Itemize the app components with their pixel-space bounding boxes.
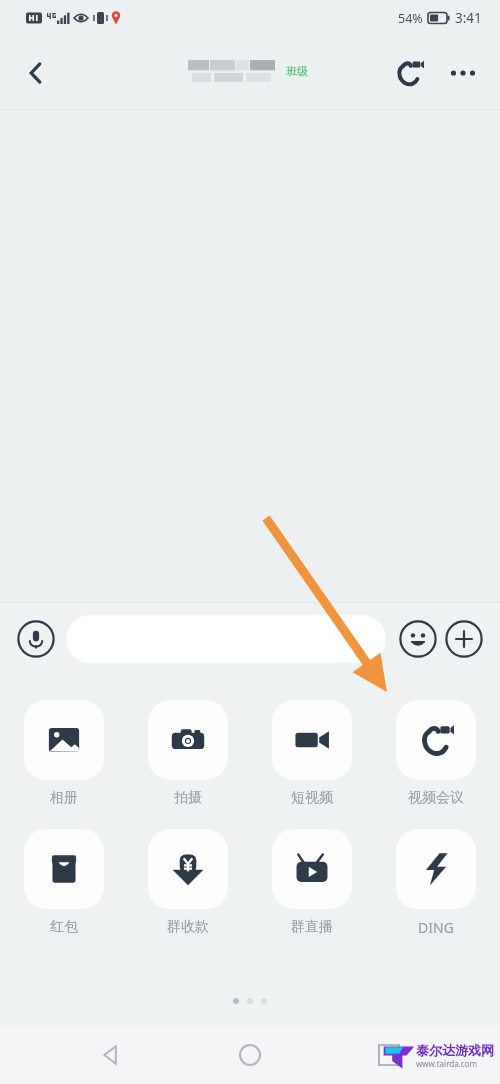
button[interactable]: Back <box>10 47 62 99</box>
staticText: 相册 <box>50 789 78 807</box>
staticText: 泰尔达游戏网 <box>416 1042 494 1058</box>
staticText: 群收款 <box>167 918 209 936</box>
button[interactable]: Video call <box>386 50 432 96</box>
staticText: 红包 <box>50 918 78 936</box>
staticText: 班级 <box>286 64 308 78</box>
staticText: 视频会议 <box>408 789 464 807</box>
staticText: 3:41 <box>455 9 482 27</box>
button[interactable]: More attachments <box>442 617 486 661</box>
button[interactable]: Voice message <box>14 617 58 661</box>
staticText: DING <box>418 918 454 937</box>
button[interactable]: 视频会议 <box>394 700 478 807</box>
button[interactable]: More options <box>440 50 486 96</box>
button[interactable] <box>66 615 386 663</box>
button[interactable]: 群收款 <box>146 829 230 936</box>
button[interactable]: 相册 <box>22 700 106 807</box>
button[interactable]: Back <box>83 1027 139 1083</box>
staticText: 54% <box>398 10 423 27</box>
button[interactable]: 群直播 <box>270 829 354 936</box>
staticText: www.tairda.com <box>416 1058 477 1069</box>
button[interactable]: 红包 <box>22 829 106 936</box>
button[interactable]: Recents <box>361 1027 417 1083</box>
button[interactable]: 拍摄 <box>146 700 230 807</box>
button[interactable]: 短视频 <box>270 700 354 807</box>
staticText: 短视频 <box>291 789 333 807</box>
button[interactable]: DING <box>394 829 478 937</box>
button[interactable]: Home <box>222 1027 278 1083</box>
staticText: 群直播 <box>291 918 333 936</box>
staticText: 拍摄 <box>174 789 202 807</box>
button[interactable]: Emoji <box>396 617 440 661</box>
